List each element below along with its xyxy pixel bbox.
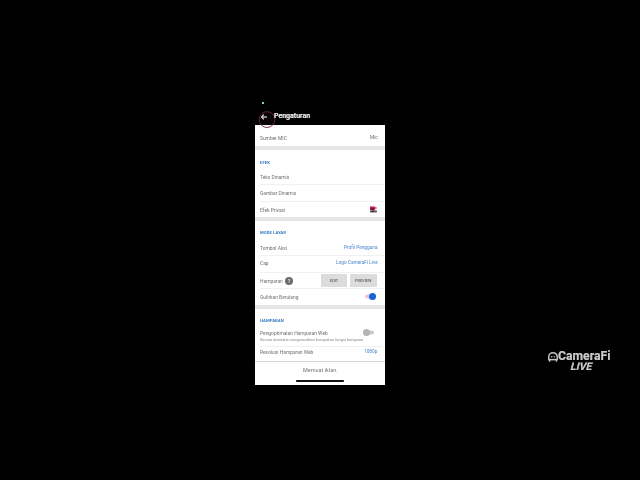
button[interactable]: Teks Dinamis xyxy=(255,168,385,185)
staticText: Efek Privasi xyxy=(260,207,286,213)
staticText: Logo CameraFi Live xyxy=(336,260,378,266)
staticText: 1080p xyxy=(364,349,378,355)
button[interactable]: Back xyxy=(255,107,281,133)
button[interactable]: Help xyxy=(285,277,293,285)
staticText: CameraFi xyxy=(558,349,611,363)
button[interactable]: Sumber MIC xyxy=(255,129,385,146)
staticText: Mic xyxy=(370,135,378,141)
staticText: Gambar Dinamis xyxy=(260,190,297,196)
button[interactable]: PREVIEW xyxy=(350,274,377,287)
button[interactable]: Efek Privasi xyxy=(255,201,385,218)
staticText: LIVE xyxy=(570,360,592,372)
staticText: ? xyxy=(288,279,291,284)
staticText: Secara otomatis menyesuaikan kecepatan f… xyxy=(260,337,363,342)
button[interactable]: Cap xyxy=(255,254,385,271)
button[interactable]: Gambar Dinamis xyxy=(255,184,385,201)
staticText: MODE LAYAR xyxy=(260,230,286,235)
staticText: Sumber MIC xyxy=(260,135,287,141)
button[interactable]: Tombol Aksi xyxy=(255,239,385,256)
staticText: Cap xyxy=(260,260,269,266)
button[interactable]: Gulirkan Berulang xyxy=(255,288,385,305)
staticText: Memuat iklan. xyxy=(303,367,338,373)
staticText: EDIT xyxy=(330,278,339,283)
staticText: Profil Pengguna xyxy=(344,245,378,251)
staticText: EFEK xyxy=(260,160,270,165)
staticText: Resolusi Hamparan Web xyxy=(260,349,314,355)
button[interactable]: Pengoptimalan Hamparan Web xyxy=(255,324,385,341)
staticText: PREVIEW xyxy=(355,278,372,283)
staticText: Pengoptimalan Hamparan Web xyxy=(260,330,328,336)
staticText: Tombol Aksi xyxy=(260,245,288,251)
staticText: Hamparan xyxy=(260,278,283,284)
staticText: Pengaturan xyxy=(274,112,311,120)
button[interactable]: Resolusi Hamparan Web xyxy=(255,343,385,360)
button[interactable]: EDIT xyxy=(321,274,347,287)
staticText: Teks Dinamis xyxy=(260,174,290,180)
staticText: Gulirkan Berulang xyxy=(260,294,299,300)
staticText: HAMPARAN xyxy=(260,318,284,323)
